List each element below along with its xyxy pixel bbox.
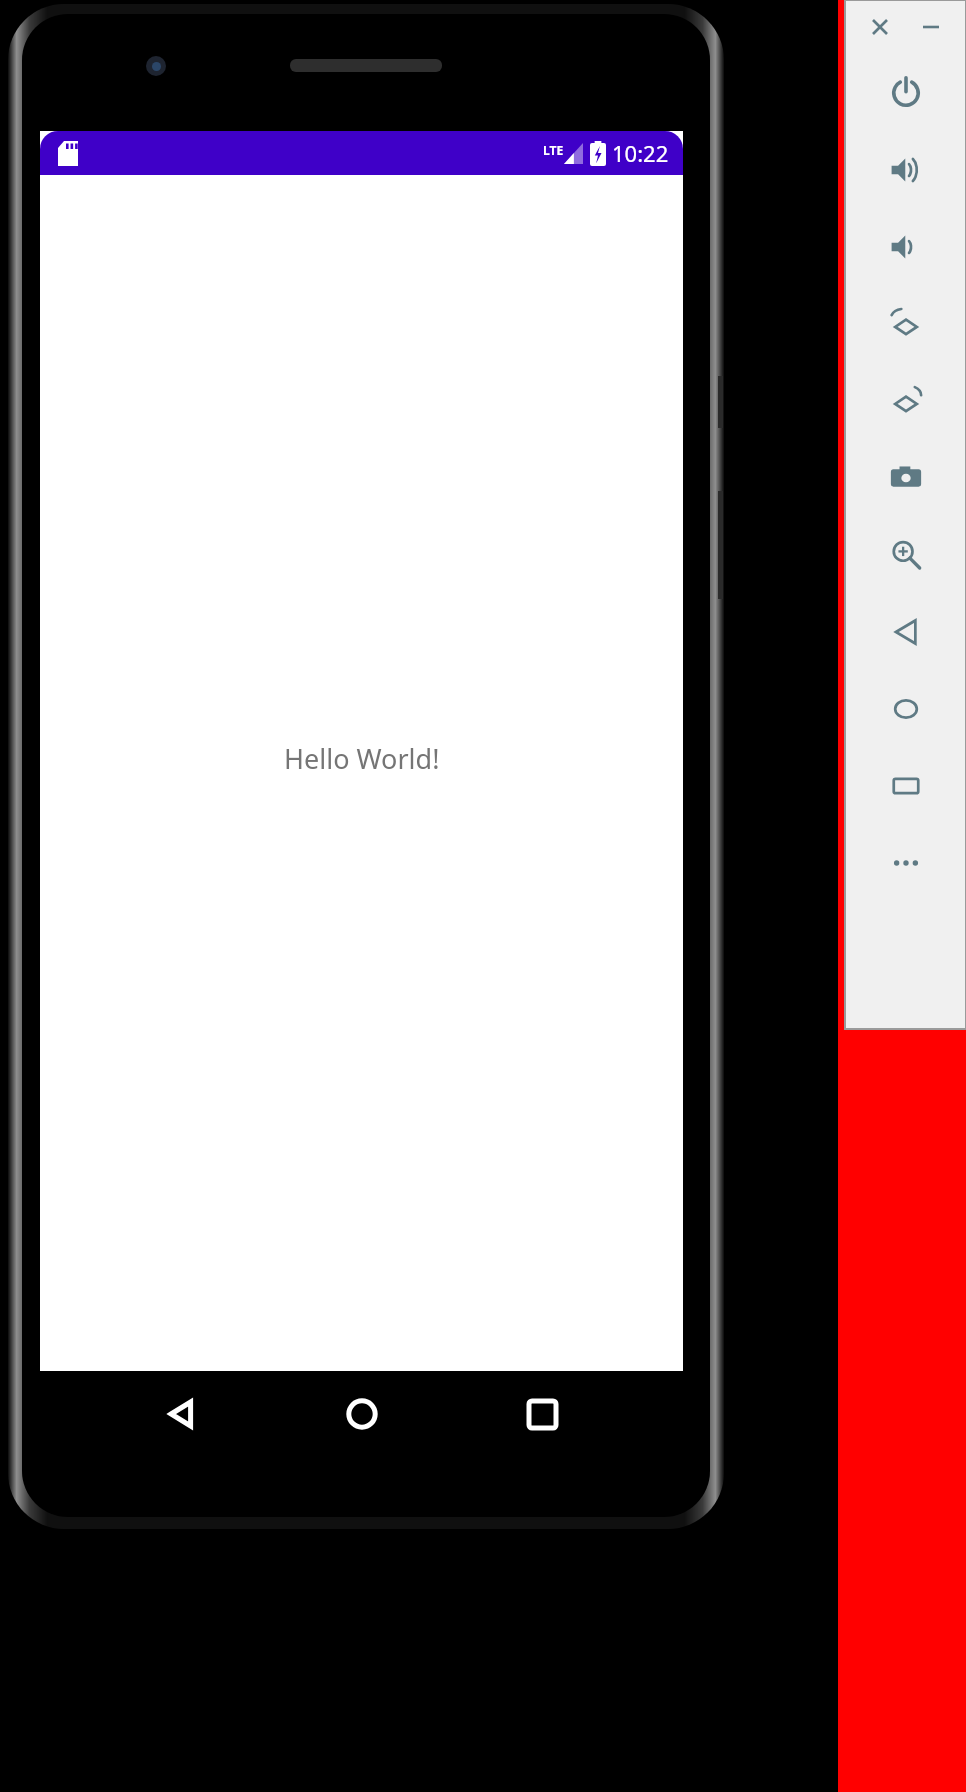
staticText: Hello World! — [284, 740, 440, 777]
button[interactable]: Rotate left — [845, 285, 966, 362]
button[interactable]: Volume down — [845, 208, 966, 285]
button[interactable]: More — [845, 824, 966, 901]
button[interactable]: Home — [845, 670, 966, 747]
button[interactable]: Zoom — [845, 516, 966, 593]
button[interactable]: Home — [322, 1374, 402, 1454]
button[interactable]: Volume up — [845, 131, 966, 208]
button[interactable]: Close — [863, 10, 897, 44]
button[interactable]: Minimize — [914, 10, 948, 44]
staticText: LTE — [543, 142, 564, 158]
button[interactable]: Rotate right — [845, 362, 966, 439]
button[interactable]: Power — [845, 54, 966, 131]
button[interactable]: Back — [141, 1374, 221, 1454]
button[interactable]: Back — [845, 593, 966, 670]
button[interactable]: Overview — [845, 747, 966, 824]
button[interactable]: Recent apps — [502, 1374, 582, 1454]
button[interactable]: Take screenshot — [845, 439, 966, 516]
staticText: 10:22 — [612, 138, 669, 168]
